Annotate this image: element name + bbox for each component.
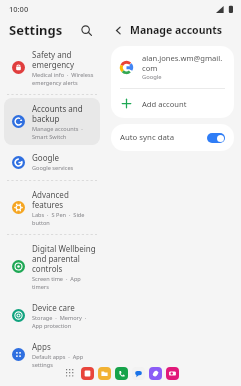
- staticText: Settings: [9, 21, 63, 39]
- button[interactable]: camera: [166, 367, 179, 380]
- staticText: Accounts and backup: [32, 103, 83, 124]
- staticText: Storage · Memory · App protection: [32, 314, 87, 329]
- button[interactable]: Google: [4, 147, 100, 177]
- staticText: Google services: [32, 164, 74, 172]
- button[interactable]: Add account: [111, 89, 234, 118]
- staticText: Digital Wellbeing and parental controls: [32, 243, 96, 274]
- button[interactable]: alan.jones.wm@gmail.com: [111, 46, 234, 88]
- button[interactable]: Safety and emergency: [4, 44, 100, 91]
- button[interactable]: Back: [109, 21, 127, 39]
- staticText: Default apps · App settings: [32, 353, 84, 368]
- staticText: Labs · S Pen · Side button: [32, 211, 85, 226]
- button[interactable]: Auto sync data: [111, 124, 234, 151]
- staticText: Device care: [32, 302, 75, 313]
- button[interactable]: Device care: [4, 297, 100, 334]
- button[interactable]: Accounts and backup: [4, 98, 100, 145]
- button[interactable]: phone: [115, 367, 128, 380]
- staticText: 10:00: [9, 4, 29, 14]
- staticText: Screen time · App timers: [32, 275, 81, 290]
- button[interactable]: Digital Wellbeing and parental controls: [4, 238, 100, 295]
- staticText: alan.jones.wm@gmail.com: [142, 53, 225, 73]
- button[interactable]: Search: [76, 20, 96, 40]
- button[interactable]: note: [81, 367, 94, 380]
- staticText: Medical info · Wireless emergency alerts: [32, 71, 94, 86]
- staticText: Google: [32, 152, 59, 163]
- staticText: Google: [142, 73, 162, 81]
- staticText: Auto sync data: [120, 132, 175, 143]
- staticText: Manage accounts: [130, 23, 223, 37]
- staticText: Advanced features: [32, 189, 96, 210]
- staticText: Add account: [142, 99, 187, 109]
- button[interactable]: Advanced features: [4, 184, 100, 231]
- button[interactable]: All apps: [63, 366, 77, 380]
- button[interactable]: Apps: [4, 336, 100, 373]
- staticText: Manage accounts · Smart Switch: [32, 125, 83, 140]
- button[interactable]: internet: [149, 367, 162, 380]
- button[interactable]: Messages: [132, 367, 145, 380]
- staticText: Safety and emergency: [32, 49, 75, 70]
- staticText: Apps: [32, 341, 51, 352]
- button[interactable]: files: [98, 367, 111, 380]
